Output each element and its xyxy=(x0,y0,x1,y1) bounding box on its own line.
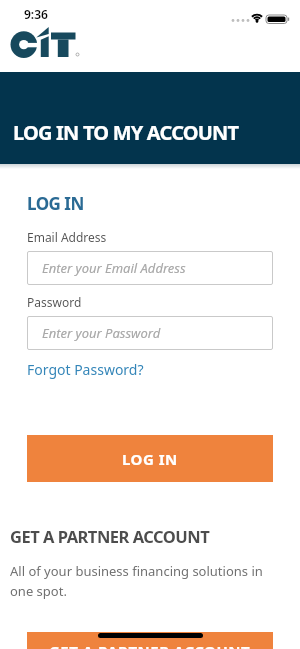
button[interactable]: GET A PARTNER ACCOUNT xyxy=(27,632,273,649)
staticText: GET A PARTNER ACCOUNT xyxy=(49,641,251,649)
staticText: Enter your Password xyxy=(42,324,161,342)
staticText: All of your business financing solutions… xyxy=(10,562,263,580)
staticText: Password xyxy=(27,294,82,310)
staticText: LOG IN xyxy=(122,449,178,469)
staticText: GET A PARTNER ACCOUNT xyxy=(10,525,210,547)
staticText: 9:36 xyxy=(24,6,48,22)
staticText: LOG IN TO MY ACCOUNT xyxy=(13,119,239,146)
button[interactable]: Forgot Password? xyxy=(27,360,144,379)
button[interactable]: Enter your Password xyxy=(27,316,273,350)
button[interactable]: LOG IN xyxy=(27,435,273,482)
button[interactable]: Enter your Email Address xyxy=(27,251,273,285)
staticText: Email Address xyxy=(27,229,107,245)
staticText: Enter your Email Address xyxy=(42,259,186,277)
staticText: one spot. xyxy=(10,582,67,600)
staticText: LOG IN xyxy=(27,192,84,215)
